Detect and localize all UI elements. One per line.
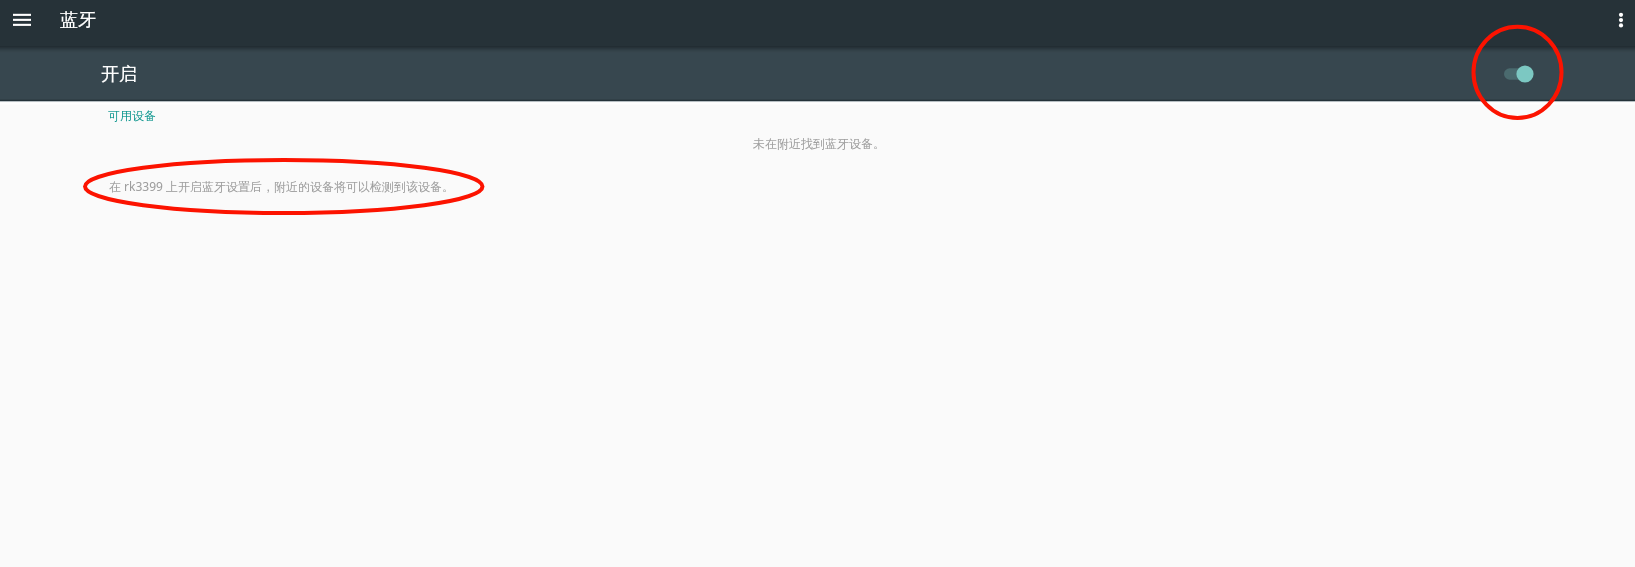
button[interactable]: More options — [1603, 5, 1635, 41]
button[interactable]: Open navigation drawer — [5, 6, 39, 40]
button[interactable]: Bluetooth on — [0, 46, 1635, 101]
button[interactable]: 可用设备 — [108, 108, 156, 123]
staticText: 开启 — [101, 63, 137, 86]
staticText: 在 rk3399 上开启蓝牙设置后，附近的设备将可以检测到该设备。 — [109, 178, 455, 194]
staticText: 蓝牙 — [60, 9, 96, 32]
staticText: 未在附近找到蓝牙设备。 — [753, 136, 885, 151]
button[interactable]: Toggle Bluetooth — [1495, 54, 1543, 94]
